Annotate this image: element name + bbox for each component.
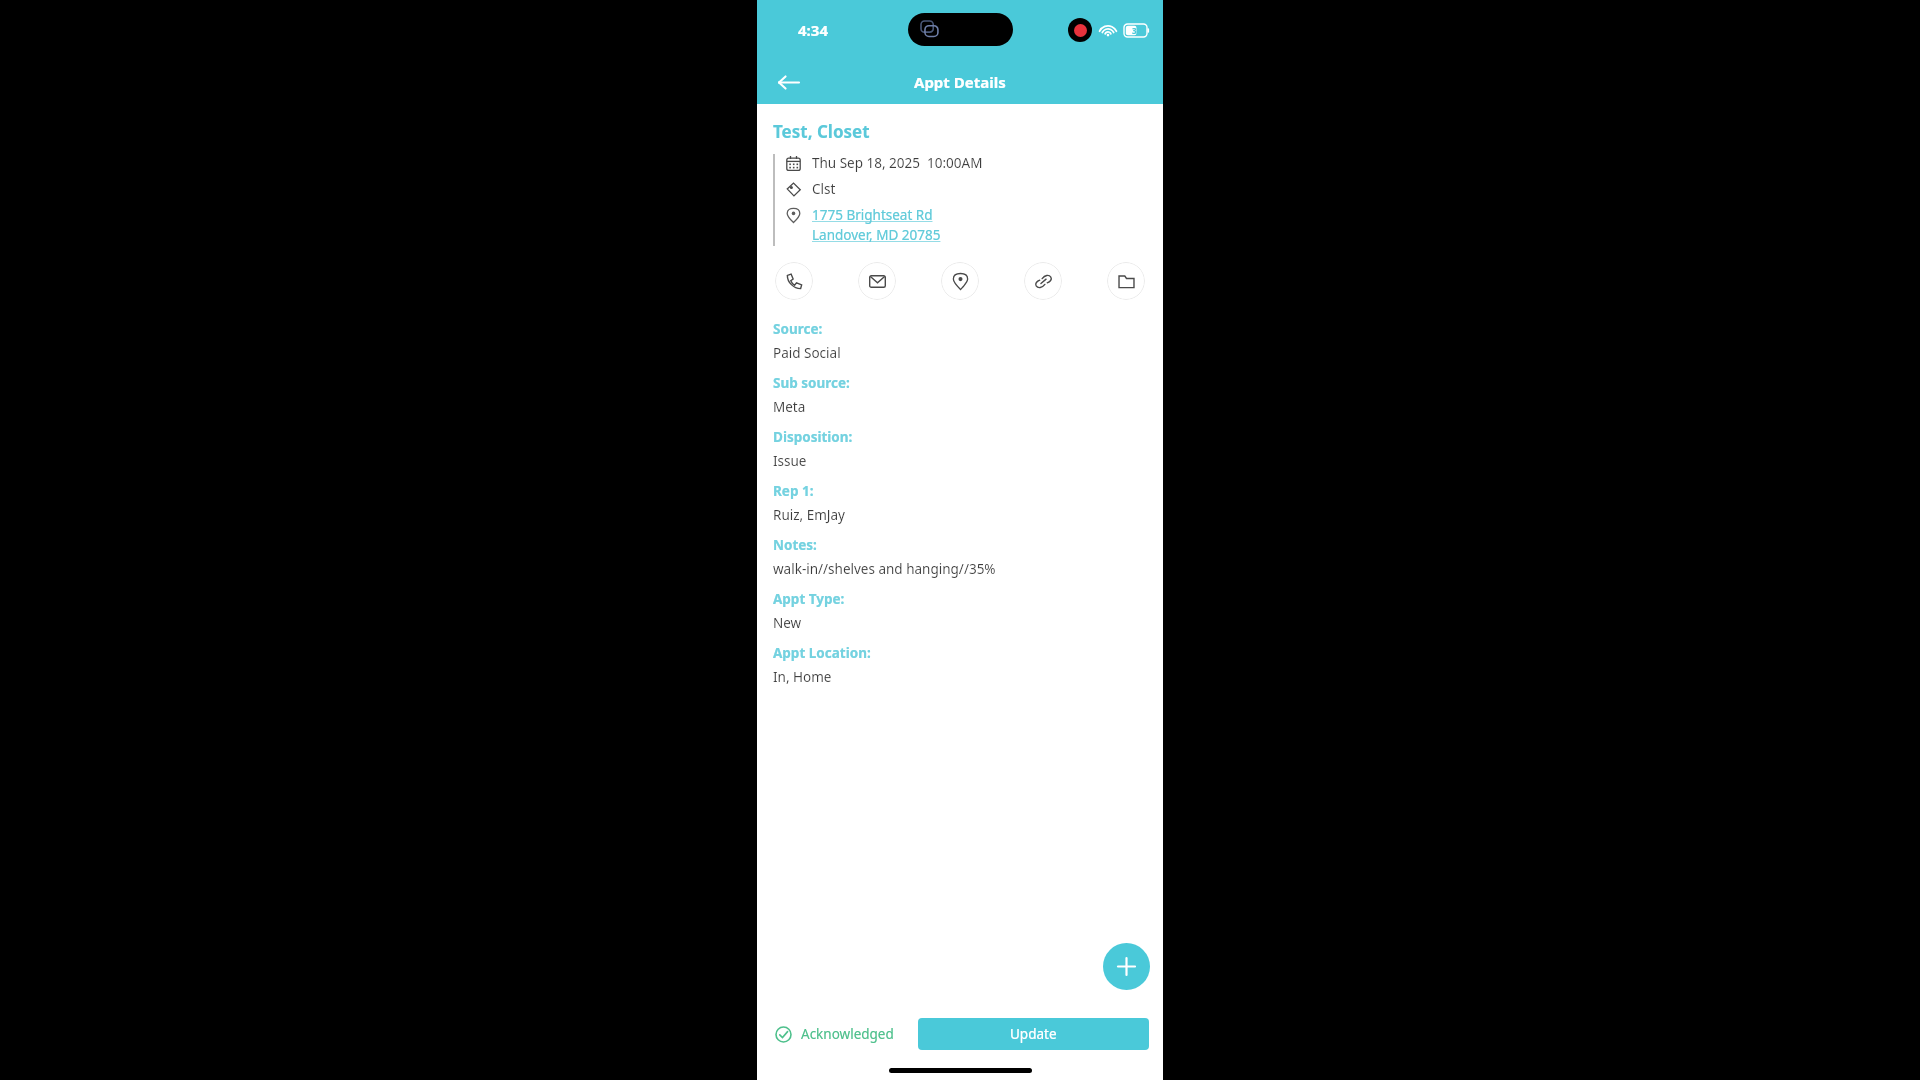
staticText: walk-in//shelves and hanging//35% — [773, 560, 996, 578]
staticText: Notes: — [773, 536, 817, 554]
button[interactable]: Email — [858, 262, 896, 300]
staticText: 32 — [1132, 25, 1142, 36]
staticText: Disposition: — [773, 428, 853, 446]
staticText: Thu Sep 18, 2025 10:00AM — [812, 154, 983, 172]
staticText: In, Home — [773, 668, 832, 686]
staticText: Sub source: — [773, 374, 850, 392]
staticText: Test, Closet — [773, 120, 870, 143]
staticText: Acknowledged — [801, 1025, 894, 1043]
button[interactable]: 1775 Brightseat Rd — [786, 206, 941, 244]
staticText: Source: — [773, 320, 823, 338]
staticText: Appt Details — [914, 72, 1006, 92]
staticText: Landover, MD 20785 — [812, 226, 941, 244]
staticText: Update — [1010, 1025, 1057, 1043]
staticText: Paid Social — [773, 344, 841, 362]
staticText: 4:34 — [798, 20, 828, 40]
staticText: Meta — [773, 398, 806, 416]
staticText: Ruiz, EmJay — [773, 506, 845, 524]
staticText: Appt Location: — [773, 644, 871, 662]
button[interactable]: Link — [1024, 262, 1062, 300]
staticText: Clst — [812, 180, 836, 198]
button[interactable]: Acknowledged — [771, 1019, 898, 1049]
button[interactable]: Directions — [941, 262, 979, 300]
staticText: Rep 1: — [773, 482, 814, 500]
staticText: New — [773, 614, 802, 632]
staticText: Issue — [773, 452, 807, 470]
button[interactable]: Add — [1103, 943, 1150, 990]
button[interactable]: Back — [771, 65, 805, 99]
staticText: 1775 Brightseat Rd — [812, 206, 933, 224]
button[interactable]: Files — [1107, 262, 1145, 300]
staticText: Appt Type: — [773, 590, 845, 608]
button[interactable]: Update — [918, 1018, 1149, 1050]
button[interactable]: Call — [775, 262, 813, 300]
